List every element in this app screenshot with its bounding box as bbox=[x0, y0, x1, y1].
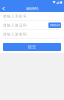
staticText: 请输入手机号 bbox=[3, 14, 27, 18]
staticText: 请输入新密码 bbox=[3, 32, 27, 36]
staticText: 请输入验证码 bbox=[3, 23, 27, 27]
staticText: 获取验证码 bbox=[50, 24, 60, 27]
button[interactable]: 获取验证码 bbox=[48, 22, 61, 28]
staticText: 提交 bbox=[28, 44, 36, 49]
staticText: 修改密码 bbox=[26, 6, 38, 11]
button[interactable]: Back bbox=[1, 5, 6, 11]
button[interactable]: 提交 bbox=[3, 43, 61, 51]
